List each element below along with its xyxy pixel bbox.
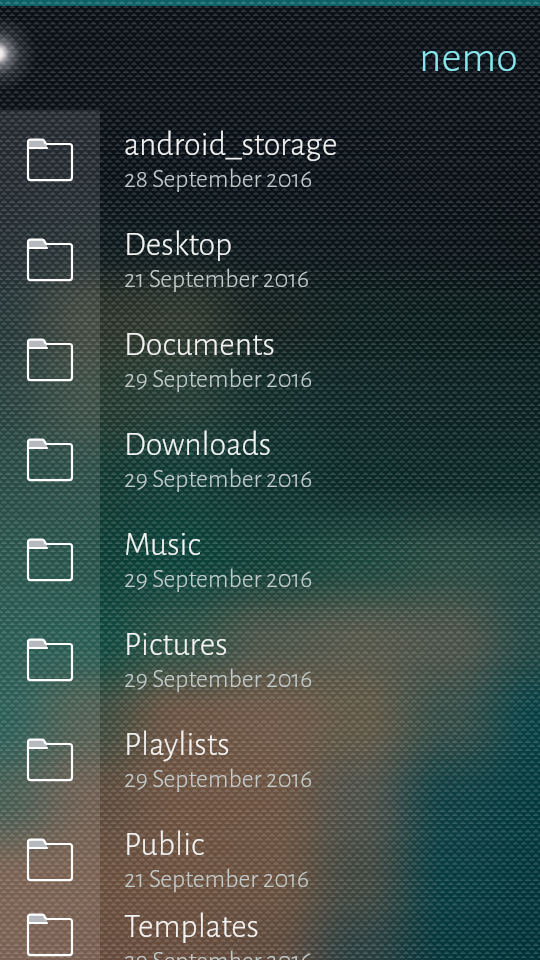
button[interactable]: Playlists [0, 710, 540, 810]
staticText: android_storage [124, 128, 338, 162]
staticText: Pictures [124, 628, 228, 662]
staticText: Templates [124, 910, 259, 944]
button[interactable]: Public [0, 810, 540, 910]
staticText: nemo [419, 36, 518, 80]
button[interactable]: Downloads [0, 410, 540, 510]
staticText: 21 September 2016 [124, 266, 310, 292]
staticText: Playlists [124, 728, 230, 762]
staticText: 29 September 2016 [124, 566, 313, 592]
staticText: 29 September 2016 [124, 766, 313, 792]
button[interactable]: Templates [0, 910, 540, 960]
staticText: 29 September 2016 [124, 466, 313, 492]
staticText: 21 September 2016 [124, 866, 310, 892]
staticText: Music [124, 528, 201, 562]
button[interactable]: Music [0, 510, 540, 610]
button[interactable]: android_storage [0, 110, 540, 210]
staticText: 29 September 2016 [124, 948, 313, 960]
staticText: 29 September 2016 [124, 666, 313, 692]
button[interactable]: Pictures [0, 610, 540, 710]
staticText: Downloads [124, 428, 272, 462]
staticText: Public [124, 828, 205, 862]
button[interactable]: Desktop [0, 210, 540, 310]
staticText: Documents [124, 328, 275, 362]
staticText: 29 September 2016 [124, 366, 313, 392]
staticText: Desktop [124, 228, 233, 262]
staticText: 28 September 2016 [124, 166, 313, 192]
button[interactable]: Documents [0, 310, 540, 410]
